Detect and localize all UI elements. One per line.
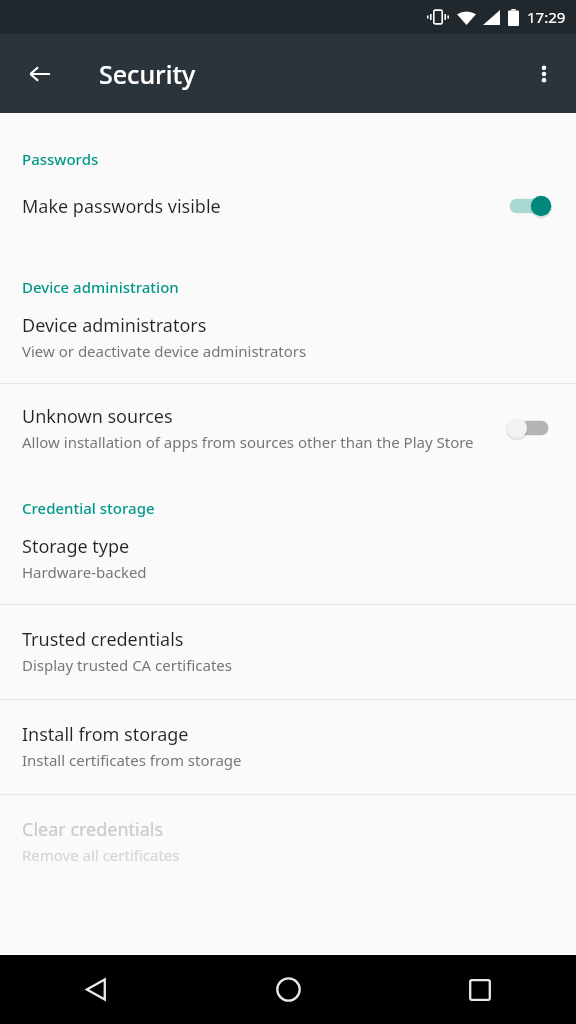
- button[interactable]: Storage type: [0, 518, 576, 604]
- staticText: 17:29: [527, 7, 566, 27]
- staticText: Passwords: [22, 149, 99, 169]
- button[interactable]: Install from storage: [0, 700, 576, 794]
- staticText: Hardware-backed: [22, 562, 147, 582]
- staticText: Credential storage: [22, 498, 155, 518]
- staticText: Security: [99, 57, 196, 91]
- staticText: Install certificates from storage: [22, 750, 242, 770]
- staticText: Storage type: [22, 534, 130, 559]
- button[interactable]: Unknown sources: [0, 384, 576, 474]
- button[interactable]: Home: [192, 955, 384, 1024]
- button[interactable]: Make passwords visible: [0, 169, 576, 241]
- staticText: Remove all certificates: [22, 845, 180, 865]
- button[interactable]: Trusted credentials: [0, 605, 576, 699]
- button[interactable]: Back: [16, 50, 64, 98]
- button[interactable]: Device administrators: [0, 297, 576, 383]
- staticText: View or deactivate device administrators: [22, 341, 307, 361]
- staticText: Device administrators: [22, 313, 207, 338]
- staticText: Allow installation of apps from sources …: [22, 432, 474, 452]
- staticText: Clear credentials: [22, 817, 164, 842]
- button[interactable]: Recent apps: [384, 955, 576, 1024]
- staticText: Trusted credentials: [22, 627, 184, 652]
- staticText: Make passwords visible: [22, 194, 502, 219]
- button[interactable]: Back: [0, 955, 192, 1024]
- button: Clear credentials: [0, 795, 576, 889]
- button[interactable]: More options: [520, 50, 568, 98]
- staticText: Device administration: [22, 277, 179, 297]
- other: Off: [502, 411, 556, 445]
- other: On: [502, 189, 556, 223]
- staticText: Install from storage: [22, 722, 189, 747]
- staticText: Display trusted CA certificates: [22, 655, 232, 675]
- staticText: Unknown sources: [22, 404, 173, 429]
